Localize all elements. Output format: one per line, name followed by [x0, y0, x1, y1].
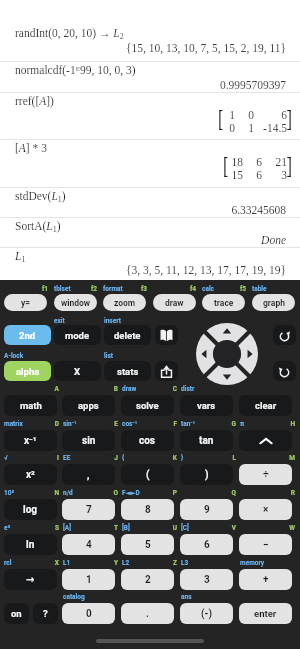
button[interactable]: Redo — [273, 325, 296, 345]
staticText: L1 — [15, 250, 26, 264]
button[interactable]: enter — [239, 603, 292, 624]
staticText: O — [78, 489, 118, 497]
staticText: math — [20, 400, 42, 411]
staticText: zoom — [114, 298, 136, 308]
button[interactable]: graph — [252, 294, 295, 311]
button[interactable]: 7 — [62, 499, 115, 520]
staticText: (-) — [201, 608, 212, 620]
staticText: 18 — [228, 156, 243, 169]
button[interactable]: x² — [4, 464, 57, 485]
button[interactable]: alpha — [4, 361, 51, 381]
button[interactable]: ? — [33, 603, 58, 624]
button[interactable]: Undo — [273, 361, 296, 381]
button[interactable]: 9 — [180, 499, 233, 520]
staticText: → — [26, 574, 35, 586]
staticText: eˣ — [4, 524, 11, 532]
button[interactable]: draw — [153, 294, 196, 311]
button[interactable]: tan — [180, 430, 233, 451]
staticText: A — [19, 385, 59, 393]
staticText: draw — [165, 298, 184, 308]
button[interactable]: log — [4, 499, 57, 520]
button[interactable]: (-) — [180, 603, 233, 624]
button[interactable]: Power — [239, 430, 292, 451]
staticText: π — [240, 420, 245, 428]
staticText: n/d — [63, 489, 73, 497]
staticText: 3 — [262, 169, 287, 182]
staticText: 15 — [228, 169, 243, 182]
staticText: 0 — [235, 109, 254, 122]
staticText: 8 — [145, 504, 151, 516]
button[interactable]: 6 — [180, 534, 233, 555]
button[interactable]: 4 — [62, 534, 115, 555]
staticText: 1 — [86, 574, 92, 586]
staticText: B — [78, 385, 118, 393]
button[interactable]: Reference guide — [155, 325, 178, 345]
staticText: f2 — [57, 285, 97, 293]
button[interactable]: ln — [4, 534, 57, 555]
staticText: X — [19, 559, 59, 567]
staticText: E — [78, 420, 118, 428]
button[interactable]: trace — [202, 294, 245, 311]
button[interactable]: mode — [54, 325, 101, 345]
staticText: 0 — [86, 608, 92, 620]
button[interactable]: clear — [239, 395, 292, 416]
button[interactable]: X — [54, 361, 101, 381]
button[interactable]: math — [4, 395, 57, 416]
staticText: insert — [104, 317, 121, 325]
staticText: 5 — [145, 539, 151, 551]
staticText: Done — [0, 234, 286, 247]
button[interactable]: ) — [180, 464, 233, 485]
button[interactable]: 3 — [180, 569, 233, 590]
button[interactable]: on — [4, 603, 29, 624]
button[interactable]: apps — [62, 395, 115, 416]
staticText: ( — [146, 469, 150, 481]
button[interactable]: sin — [62, 430, 115, 451]
staticText: ans — [181, 593, 192, 601]
staticText: [C] — [181, 524, 189, 532]
button[interactable]: window — [54, 294, 97, 311]
staticText: Q — [196, 489, 236, 497]
button[interactable]: stats — [104, 361, 151, 381]
button[interactable]: 2 — [121, 569, 174, 590]
staticText: x² — [26, 469, 35, 481]
button[interactable]: , — [62, 464, 115, 485]
staticText: apps — [78, 400, 99, 411]
button[interactable]: Directional pad — [196, 323, 258, 385]
staticText: on — [11, 608, 22, 619]
button[interactable]: 0 — [62, 603, 115, 624]
button[interactable]: . — [121, 603, 174, 624]
staticText: 6 — [254, 109, 287, 122]
staticText: enter — [254, 608, 277, 619]
button[interactable]: 2nd — [4, 325, 51, 345]
staticText: 2nd — [19, 330, 36, 341]
staticText: delete — [114, 330, 141, 341]
button[interactable]: y= — [4, 294, 47, 311]
staticText: N — [19, 489, 59, 497]
button[interactable]: 5 — [121, 534, 174, 555]
button[interactable]: solve — [121, 395, 174, 416]
button[interactable]: vars — [180, 395, 233, 416]
button[interactable]: Share — [155, 361, 178, 381]
staticText: y= — [21, 298, 31, 308]
button[interactable]: ÷ — [239, 464, 292, 485]
staticText: f4 — [156, 285, 196, 293]
staticText: randInt(0, 20, 10) → L2 — [15, 27, 124, 41]
staticText: 1 — [223, 109, 235, 122]
button[interactable]: ( — [121, 464, 174, 485]
button[interactable]: 8 — [121, 499, 174, 520]
button[interactable]: + — [239, 569, 292, 590]
button[interactable]: → — [4, 569, 57, 590]
staticText: C — [137, 385, 177, 393]
staticText: catalog — [63, 593, 85, 601]
button[interactable]: x⁻¹ — [4, 430, 57, 451]
button[interactable]: − — [239, 534, 292, 555]
staticText: − — [263, 539, 269, 551]
button[interactable]: zoom — [103, 294, 146, 311]
staticText: P — [137, 489, 177, 497]
staticText: 6 — [243, 169, 262, 182]
button[interactable]: × — [239, 499, 292, 520]
button[interactable]: cos — [121, 430, 174, 451]
button[interactable]: delete — [104, 325, 151, 345]
staticText: SortA(L1) — [15, 220, 61, 234]
button[interactable]: 1 — [62, 569, 115, 590]
